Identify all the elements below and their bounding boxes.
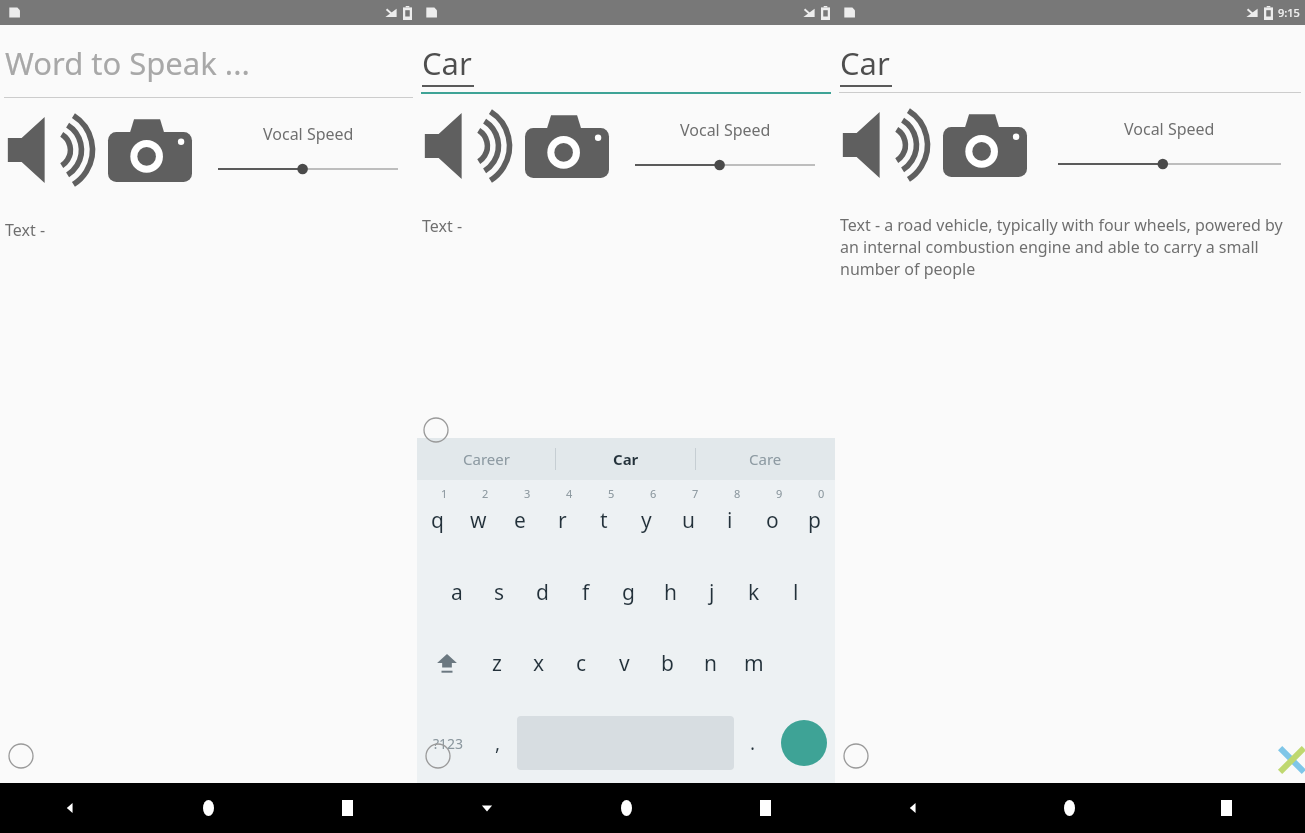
staticText: j (709, 578, 715, 607)
staticText: Text - (422, 215, 463, 237)
staticText: p (808, 506, 821, 535)
staticText: h (664, 578, 677, 607)
button[interactable]: Home (139, 783, 278, 833)
staticText: 1 (441, 486, 448, 501)
button[interactable]: l (775, 552, 817, 624)
button[interactable]: 3 (499, 480, 541, 552)
button[interactable]: Car (417, 42, 835, 94)
staticText: w (470, 506, 487, 535)
button[interactable]: b (646, 624, 689, 703)
button[interactable]: c (560, 624, 603, 703)
button[interactable]: Speak (2, 115, 102, 185)
staticText: x (533, 649, 545, 678)
button[interactable]: n (689, 624, 732, 703)
staticText: m (744, 649, 764, 678)
staticText: l (793, 578, 799, 607)
staticText: i (727, 506, 733, 535)
button[interactable]: Speak (837, 110, 937, 180)
button[interactable]: Vocal Speed (198, 111, 417, 189)
staticText: q (431, 506, 444, 535)
staticText: ?123 (433, 734, 464, 753)
staticText: g (622, 578, 635, 607)
button[interactable]: Back (835, 783, 991, 833)
staticText: Career (463, 449, 510, 469)
button[interactable]: Recents (696, 783, 835, 833)
button[interactable]: 4 (541, 480, 583, 552)
button[interactable]: m (732, 624, 775, 703)
button[interactable]: 6 (625, 480, 667, 552)
button[interactable]: g (607, 552, 649, 624)
button[interactable]: 8 (709, 480, 751, 552)
button[interactable]: Word to Speak ... (0, 42, 417, 98)
button[interactable]: Camera (102, 115, 198, 185)
staticText: d (536, 578, 549, 607)
button[interactable]: 5 (583, 480, 625, 552)
button[interactable]: 2 (458, 480, 499, 552)
staticText: t (600, 506, 608, 535)
button[interactable]: Vocal Speed (615, 107, 835, 185)
staticText: e (514, 506, 526, 535)
button[interactable]: Recents (1148, 783, 1305, 833)
button[interactable]: 7 (667, 480, 709, 552)
button[interactable]: Recents (278, 783, 417, 833)
staticText: a (451, 578, 463, 607)
button[interactable]: Home (557, 783, 696, 833)
button[interactable]: Care (696, 438, 835, 480)
staticText: f (582, 578, 590, 607)
button[interactable]: 9 (751, 480, 793, 552)
staticText: . (750, 730, 756, 756)
staticText: 0 (818, 486, 825, 501)
staticText: z (492, 649, 502, 678)
button[interactable]: Shift (417, 624, 476, 703)
staticText: 9:15 (1278, 5, 1300, 20)
button[interactable]: ?123 (417, 703, 479, 783)
button[interactable]: z (476, 624, 518, 703)
button[interactable]: v (603, 624, 646, 703)
staticText: r (558, 506, 567, 535)
button[interactable]: Back (0, 783, 139, 833)
button[interactable]: Hide keyboard (417, 783, 557, 833)
staticText: s (494, 578, 505, 607)
button[interactable]: Vocal Speed (1033, 106, 1305, 184)
button[interactable]: s (478, 552, 521, 624)
staticText: b (661, 649, 674, 678)
staticText: n (704, 649, 717, 678)
staticText: Car (422, 42, 472, 84)
button[interactable]: d (521, 552, 564, 624)
button[interactable]: j (691, 552, 733, 624)
staticText: u (682, 506, 695, 535)
staticText: Car (840, 42, 890, 84)
button[interactable]: k (733, 552, 775, 624)
button[interactable]: Home (991, 783, 1148, 833)
button[interactable]: Camera (519, 111, 615, 181)
button[interactable]: f (564, 552, 607, 624)
button[interactable]: Car (556, 438, 695, 480)
staticText: 9 (776, 486, 783, 501)
staticText: o (766, 506, 779, 535)
button[interactable]: Speak (419, 111, 519, 181)
button[interactable]: Car (835, 42, 1305, 93)
button[interactable]: . (734, 703, 772, 783)
button[interactable]: 0 (793, 480, 835, 552)
staticText: Car (613, 449, 639, 469)
staticText: Text - a road vehicle, typically with fo… (840, 214, 1297, 280)
button[interactable]: , (479, 703, 517, 783)
button[interactable]: a (435, 552, 478, 624)
button[interactable]: Enter (781, 720, 827, 766)
button[interactable]: h (649, 552, 691, 624)
staticText: Vocal Speed (1124, 118, 1215, 140)
button[interactable]: x (518, 624, 560, 703)
staticText: 3 (524, 486, 531, 501)
button[interactable]: Camera (937, 110, 1033, 180)
staticText: Word to Speak ... (5, 42, 250, 84)
staticText: Vocal Speed (263, 123, 354, 145)
button[interactable]: Career (417, 438, 555, 480)
staticText: 2 (482, 486, 489, 501)
button[interactable]: 1 (417, 480, 458, 552)
staticText: , (495, 730, 501, 756)
staticText: 6 (650, 486, 657, 501)
staticText: k (748, 578, 760, 607)
staticText: 5 (608, 486, 615, 501)
